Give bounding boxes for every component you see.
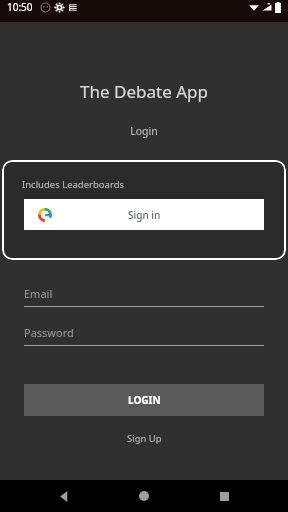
button[interactable]: Sign Up xyxy=(119,430,170,447)
staticText: Sign Up xyxy=(127,432,162,445)
button[interactable]: Password xyxy=(24,325,264,346)
button[interactable]: Home xyxy=(128,480,160,512)
button[interactable]: Email xyxy=(24,286,264,307)
button[interactable]: Back xyxy=(48,480,80,512)
button[interactable]: Sign in xyxy=(24,199,264,230)
staticText: 10:50 xyxy=(7,0,33,14)
staticText: Email xyxy=(24,286,53,301)
button[interactable]: Recent apps xyxy=(208,480,240,512)
staticText: Includes Leaderboards xyxy=(22,178,125,191)
staticText: Login xyxy=(130,124,158,138)
staticText: Sign in xyxy=(128,208,161,222)
staticText: The Debate App xyxy=(80,80,208,103)
button[interactable]: LOGIN xyxy=(24,384,264,416)
staticText: Password xyxy=(24,325,74,340)
staticText: LOGIN xyxy=(128,393,161,407)
